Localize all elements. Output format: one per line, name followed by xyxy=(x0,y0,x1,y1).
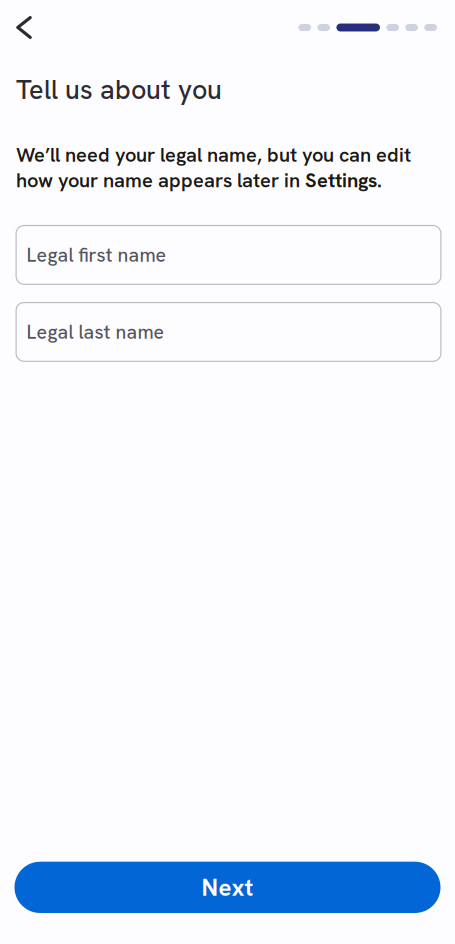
button[interactable]: Legal last name xyxy=(15,302,441,362)
staticText: Next xyxy=(201,872,253,903)
staticText: Legal last name xyxy=(26,319,164,345)
staticText: Legal first name xyxy=(26,242,166,268)
staticText: Tell us about you xyxy=(16,72,222,107)
button[interactable]: Next xyxy=(14,862,440,913)
staticText: We’ll need your legal name, but you can … xyxy=(16,142,411,193)
button[interactable]: Back xyxy=(0,8,44,47)
button[interactable]: Legal first name xyxy=(15,225,441,285)
